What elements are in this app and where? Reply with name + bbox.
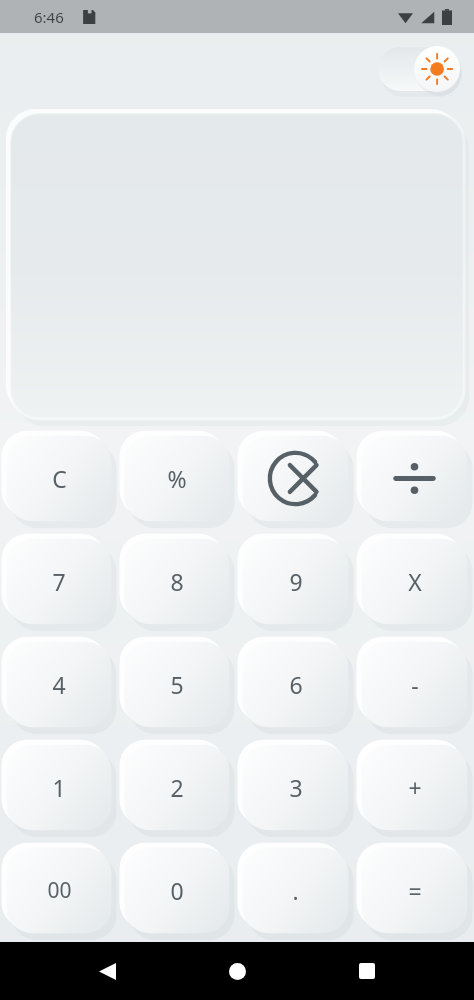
- staticText: 9: [289, 566, 303, 597]
- staticText: 1: [52, 772, 66, 803]
- staticText: .: [292, 875, 299, 906]
- staticText: +: [408, 772, 422, 803]
- button[interactable]: 2: [118, 736, 236, 839]
- staticText: -: [411, 669, 419, 700]
- staticText: 0: [170, 875, 184, 906]
- button[interactable]: 6: [236, 633, 355, 736]
- staticText: 6:46: [34, 7, 64, 27]
- staticText: X: [408, 566, 422, 597]
- button[interactable]: =: [355, 839, 474, 942]
- button[interactable]: Home: [214, 948, 260, 994]
- button[interactable]: -: [355, 633, 474, 736]
- button[interactable]: +: [355, 736, 474, 839]
- button[interactable]: Divide: [355, 427, 474, 530]
- button[interactable]: %: [118, 427, 236, 530]
- staticText: =: [408, 875, 422, 906]
- button[interactable]: Recents: [344, 948, 390, 994]
- button[interactable]: C: [0, 427, 118, 530]
- button[interactable]: Back: [84, 948, 130, 994]
- button[interactable]: X: [355, 530, 474, 633]
- button[interactable]: 0: [118, 839, 236, 942]
- button[interactable]: Toggle theme: [378, 47, 460, 91]
- staticText: %: [167, 463, 187, 494]
- button[interactable]: Backspace: [236, 427, 355, 530]
- staticText: C: [52, 463, 67, 494]
- button[interactable]: 5: [118, 633, 236, 736]
- button[interactable]: .: [236, 839, 355, 942]
- button[interactable]: 4: [0, 633, 118, 736]
- button[interactable]: 8: [118, 530, 236, 633]
- staticText: 5: [170, 669, 184, 700]
- staticText: 8: [170, 566, 184, 597]
- staticText: 6: [289, 669, 303, 700]
- button[interactable]: 7: [0, 530, 118, 633]
- staticText: 2: [170, 772, 184, 803]
- button[interactable]: 3: [236, 736, 355, 839]
- staticText: 4: [52, 669, 66, 700]
- staticText: 00: [47, 876, 72, 905]
- staticText: 7: [52, 566, 66, 597]
- button[interactable]: 1: [0, 736, 118, 839]
- button[interactable]: 00: [0, 839, 118, 942]
- staticText: 3: [289, 772, 303, 803]
- button[interactable]: 9: [236, 530, 355, 633]
